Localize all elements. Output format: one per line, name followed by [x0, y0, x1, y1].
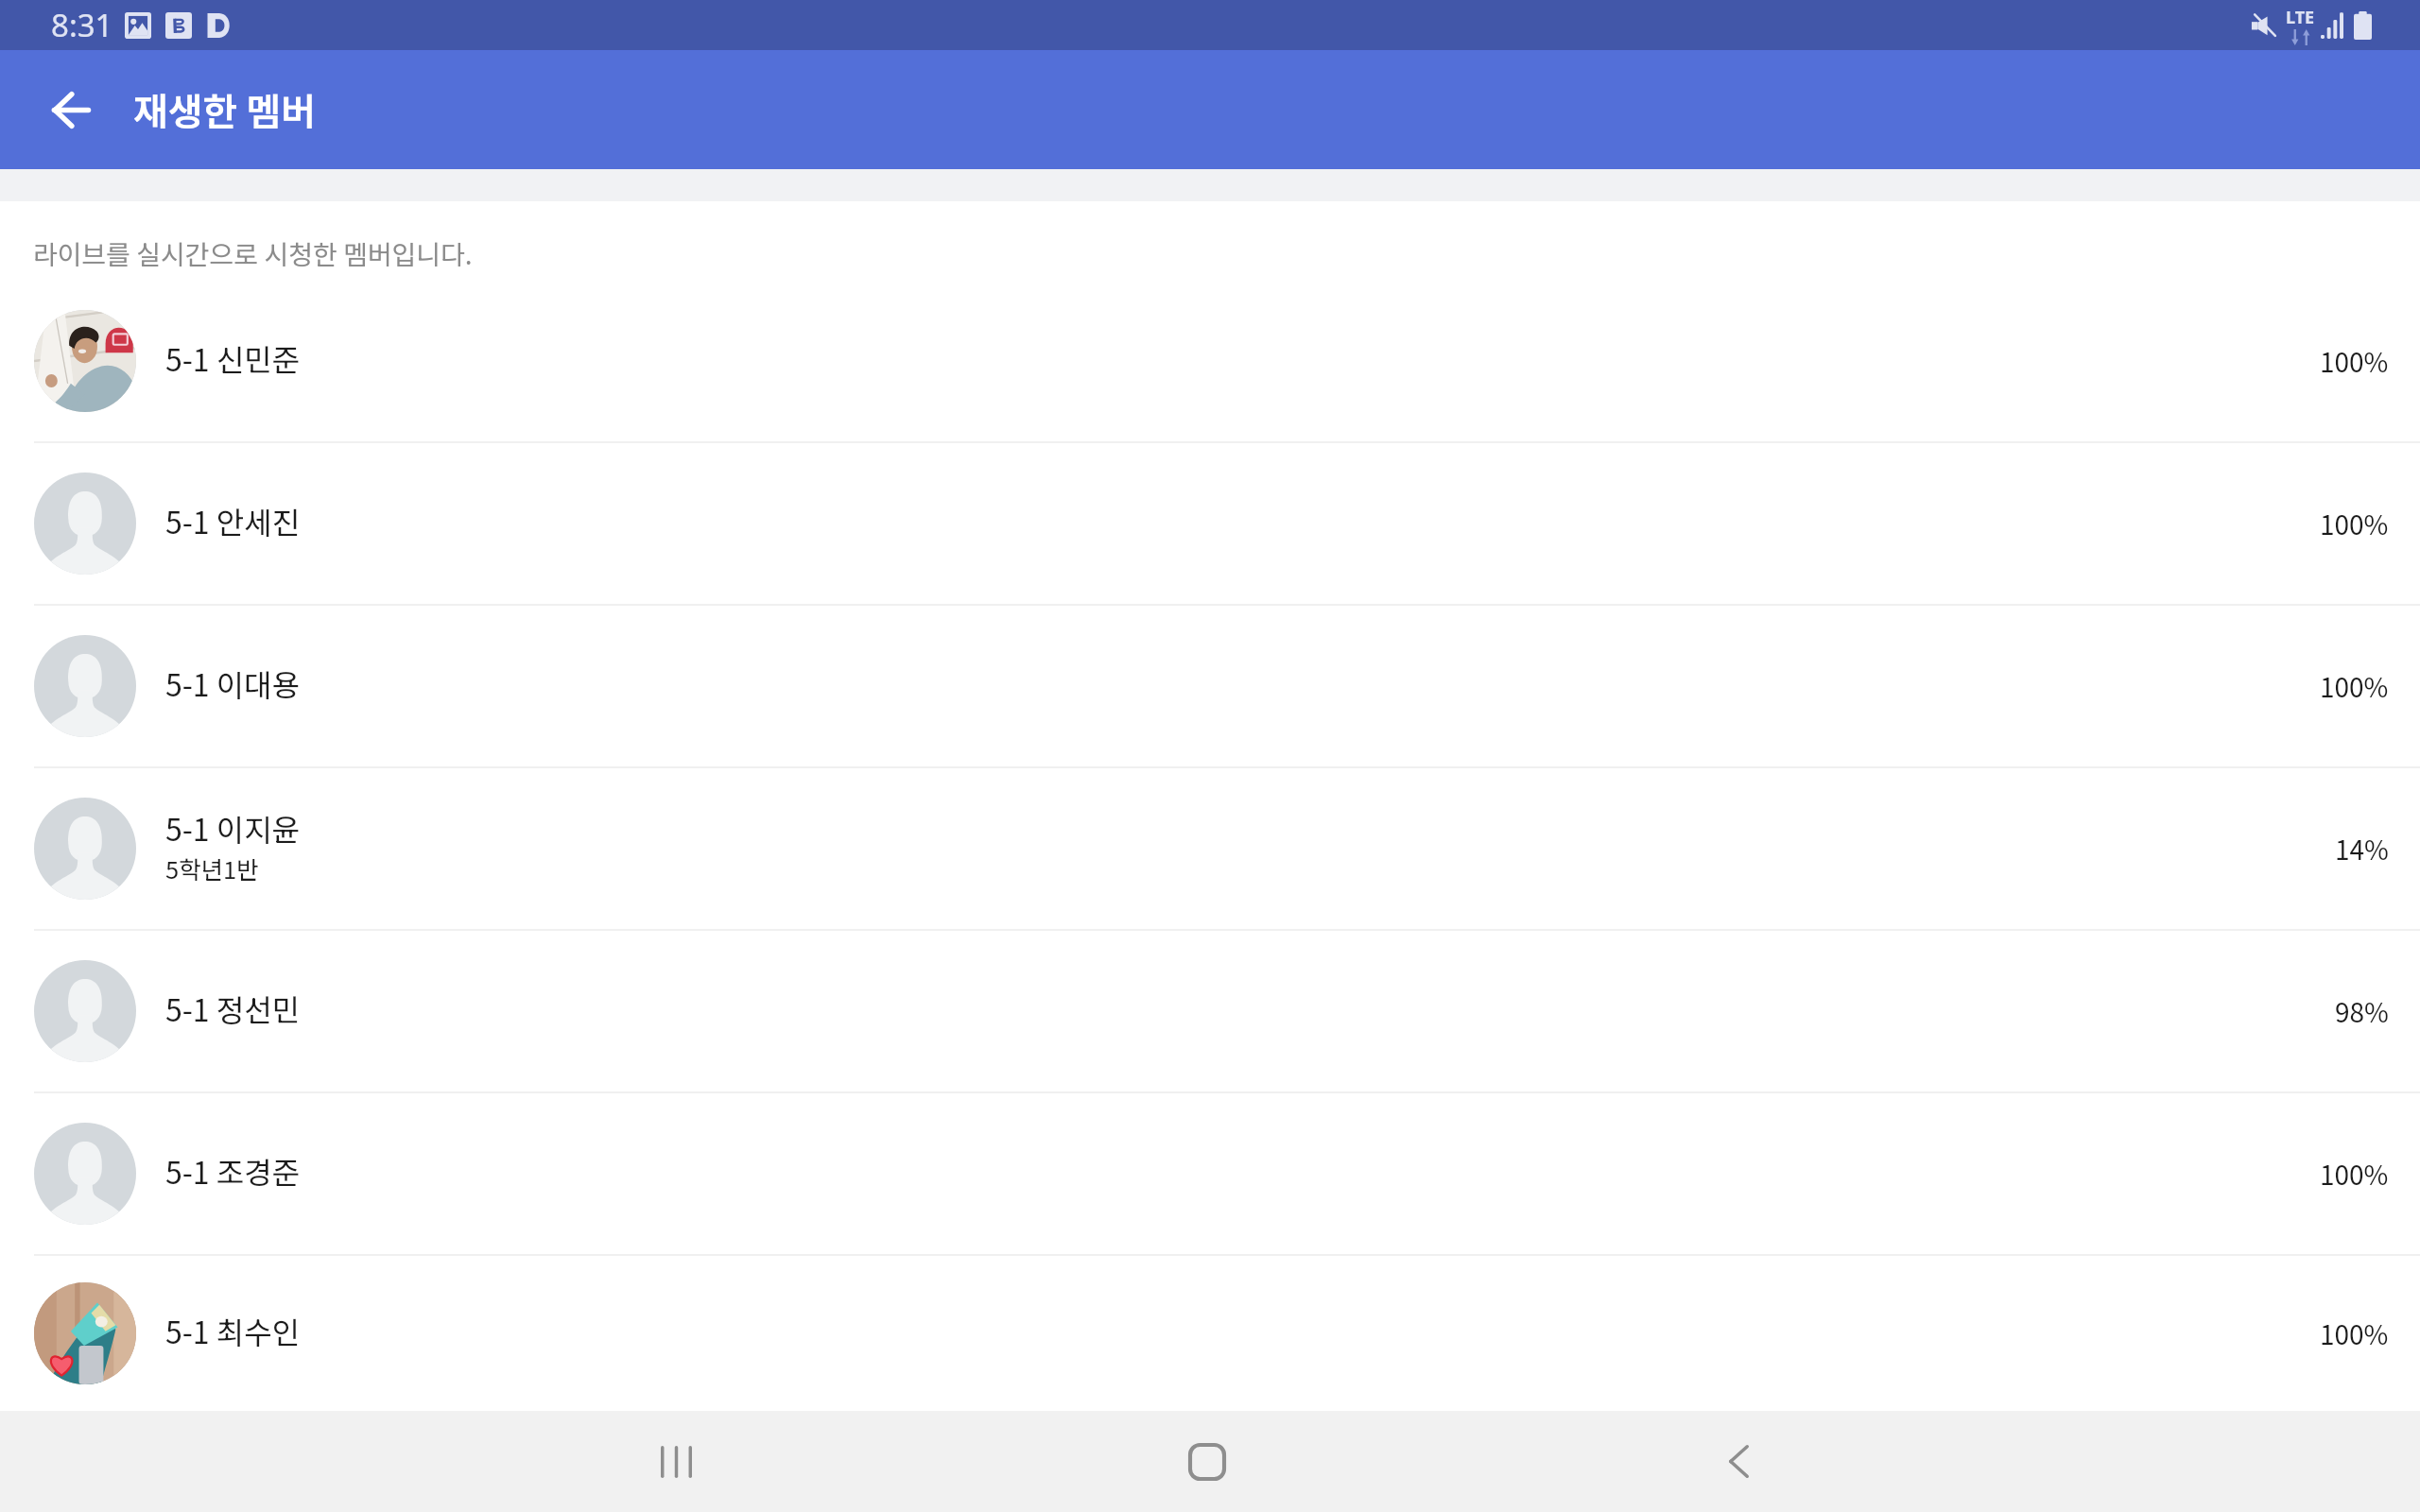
- staticText: 100%: [2320, 667, 2389, 706]
- staticText: 100%: [2320, 1155, 2389, 1194]
- button[interactable]: Back: [1682, 1411, 1795, 1512]
- button[interactable]: 5-1 신민준: [0, 281, 2420, 441]
- staticText: 5-1 정선민: [165, 987, 301, 1030]
- button[interactable]: Recents: [619, 1411, 733, 1512]
- button[interactable]: 5-1 안세진: [0, 443, 2420, 604]
- button[interactable]: Back: [26, 64, 116, 155]
- button[interactable]: 5-1 이대용: [0, 606, 2420, 766]
- staticText: 5학년1반: [165, 850, 259, 885]
- staticText: 5-1 신민준: [165, 336, 301, 380]
- staticText: 5-1 이대용: [165, 661, 301, 705]
- staticText: 5-1 이지윤: [165, 806, 301, 850]
- button[interactable]: Home: [1150, 1411, 1264, 1512]
- button[interactable]: 5-1 조경준: [0, 1093, 2420, 1254]
- staticText: 100%: [2320, 342, 2389, 381]
- staticText: 5-1 안세진: [165, 499, 301, 542]
- staticText: 8:31: [51, 4, 113, 46]
- staticText: 라이브를 실시간으로 시청한 멤버입니다.: [33, 234, 473, 273]
- staticText: 5-1 최수인: [165, 1309, 301, 1352]
- button[interactable]: 5-1 이지윤: [0, 768, 2420, 929]
- staticText: 재생한 멤버: [133, 82, 317, 137]
- button[interactable]: 5-1 정선민: [0, 931, 2420, 1091]
- staticText: 98%: [2335, 992, 2389, 1031]
- staticText: LTE: [2286, 6, 2315, 29]
- staticText: 100%: [2320, 505, 2389, 543]
- staticText: 14%: [2335, 830, 2389, 868]
- staticText: 5-1 조경준: [165, 1149, 301, 1193]
- button[interactable]: 5-1 최수인: [0, 1256, 2420, 1411]
- staticText: 100%: [2320, 1314, 2389, 1353]
